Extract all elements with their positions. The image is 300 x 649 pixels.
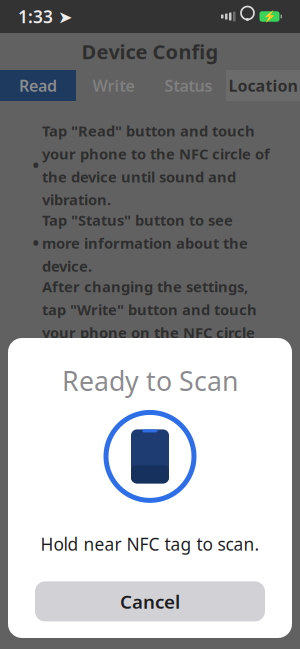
staticText: Tap "Status" button to see more informat… (42, 210, 248, 276)
staticText: Ready to Scan (62, 363, 238, 398)
staticText: • (32, 154, 39, 177)
button[interactable]: Location (226, 70, 300, 101)
button[interactable]: Status (151, 70, 226, 101)
staticText: ⚡ (263, 10, 276, 23)
staticText: Cancel (120, 589, 180, 614)
button[interactable]: Cancel (35, 581, 265, 621)
staticText: Device Config (81, 38, 218, 65)
button[interactable]: Read (0, 70, 76, 101)
staticText: • (32, 232, 39, 255)
staticText: • (32, 332, 39, 355)
staticText: Write (92, 75, 134, 96)
staticText: Status (164, 75, 212, 96)
staticText: 1:33 ➤ (18, 5, 73, 28)
staticText: After changing the settings, tap "Write"… (42, 277, 257, 411)
button[interactable]: Write (76, 70, 151, 101)
staticText: Hold near NFC tag to scan. (40, 532, 259, 555)
staticText: Tap "Read" button and touch your phone t… (42, 121, 270, 209)
staticText: Location (228, 75, 297, 96)
staticText: Read (19, 75, 57, 96)
staticText: Tap "Location" button to find out your c… (42, 412, 253, 478)
